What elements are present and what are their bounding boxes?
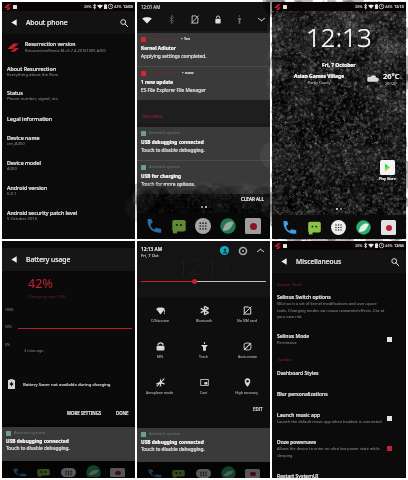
button[interactable]: Kernel Adiutor: [137, 33, 270, 66]
button[interactable]: Play Store: [379, 160, 396, 181]
button[interactable]: Android system: [137, 127, 270, 160]
button[interactable]: Bluetooth: [184, 305, 224, 323]
button[interactable]: Messaging: [36, 468, 51, 477]
button[interactable]: Launch music app: [272, 412, 406, 424]
staticText: Bluetooth: [196, 318, 213, 323]
button[interactable]: Auto-rotate: [227, 341, 267, 359]
button[interactable]: EDIT: [253, 406, 263, 412]
button[interactable]: Torch: [184, 341, 224, 359]
button[interactable]: Android system: [137, 161, 270, 194]
button[interactable]: DONE: [116, 410, 129, 416]
staticText: 0%: [5, 342, 10, 347]
staticText: Fri, 7 Oct: [141, 253, 159, 259]
button[interactable]: MN: [140, 341, 180, 359]
staticText: 12:13 AM: [141, 246, 163, 253]
button[interactable]: Phone: [146, 218, 162, 234]
staticText: Kernel Adiutor: [141, 45, 176, 52]
button[interactable]: Aeroplane mode: [140, 377, 180, 395]
staticText: Play Store: [379, 176, 396, 181]
staticText: 12:01 AM: [141, 4, 161, 10]
staticText: Applying settings completed.: [141, 53, 207, 60]
staticText: • now: [182, 70, 194, 76]
button[interactable]: C/Stivo.exe: [140, 305, 180, 323]
button[interactable]: Search: [117, 16, 130, 29]
button[interactable]: Selinux Mode: [272, 333, 406, 345]
button[interactable]: About Resurrection: [2, 65, 135, 78]
button[interactable]: Asian Games Village: [274, 71, 400, 86]
staticText: Selinux Mode: [277, 333, 310, 340]
staticText: A350: [7, 166, 17, 172]
button[interactable]: Settings: [238, 246, 247, 255]
staticText: Device model: [7, 159, 42, 166]
button[interactable]: Phone: [282, 220, 297, 235]
staticText: 44%: [385, 4, 393, 9]
button[interactable]: Cast: [184, 377, 224, 395]
staticText: USB debugging connected: [6, 438, 69, 445]
button[interactable]: Messaging: [171, 218, 187, 234]
button[interactable]: Selinux Switch options: [272, 294, 406, 319]
staticText: Torch: [199, 354, 209, 359]
staticText: ONGOING: [142, 114, 163, 120]
button[interactable]: Back: [7, 16, 20, 29]
button[interactable]: High accuracy: [227, 377, 267, 395]
button[interactable]: Messaging: [307, 220, 322, 235]
button[interactable]: Resurrection version: [2, 39, 135, 55]
staticText: Phone number, signal, etc.: [7, 96, 59, 102]
button[interactable]: Legal information: [2, 115, 135, 122]
button[interactable]: Back: [277, 255, 290, 268]
staticText: Doze powersave: [277, 439, 317, 446]
button[interactable]: All apps: [61, 468, 76, 477]
button[interactable]: Search: [388, 255, 401, 268]
staticText: Asian Games Village: [294, 73, 345, 80]
staticText: Android version: [7, 184, 48, 191]
staticText: Battery usage: [26, 255, 71, 264]
button[interactable]: Browser: [220, 218, 236, 234]
staticText: 12:13: [394, 4, 404, 9]
button[interactable]: CLEAR ALL: [241, 196, 264, 202]
button[interactable]: Android security patch level: [2, 209, 135, 222]
button[interactable]: Dashboard Styles: [272, 370, 406, 377]
button[interactable]: Restart SystemUI: [272, 473, 406, 478]
button[interactable]: Camera: [381, 220, 396, 235]
button[interactable]: Battery Saver not available during charg…: [2, 379, 135, 389]
button[interactable]: Collapse: [256, 246, 265, 255]
staticText: USB debugging connected: [141, 439, 204, 446]
button[interactable]: MORE SETTINGS: [67, 410, 102, 416]
staticText: 50%: [5, 324, 12, 329]
button[interactable]: User: [220, 246, 229, 255]
staticText: Launch music app: [277, 412, 321, 419]
staticText: Android system: [149, 431, 181, 437]
staticText: No SIM card: [237, 318, 258, 323]
button[interactable]: All apps: [196, 469, 211, 478]
button[interactable]: Android system: [2, 427, 135, 461]
staticText: USB for charging: [141, 173, 182, 180]
button[interactable]: Android system: [137, 428, 270, 462]
button[interactable]: Status: [2, 89, 135, 102]
button[interactable]: Camera: [245, 218, 261, 234]
button[interactable]: Blur personalizations: [272, 391, 406, 398]
button[interactable]: All apps: [331, 220, 346, 235]
button[interactable]: Device model: [2, 159, 135, 172]
button[interactable]: Browser: [221, 469, 236, 478]
staticText: 26°C: [383, 71, 400, 81]
button[interactable]: No SIM card: [227, 305, 267, 323]
staticText: Dashboard Styles: [277, 370, 319, 377]
button[interactable]: Android version: [2, 184, 135, 197]
button[interactable]: Browser: [86, 468, 101, 477]
staticText: Miscellaneous: [296, 257, 342, 266]
button[interactable]: All apps: [195, 218, 211, 234]
button[interactable]: Doze powersave: [272, 439, 406, 458]
staticText: Tweaks: [277, 357, 292, 362]
button[interactable]: Phone: [12, 468, 27, 477]
staticText: Android security patch level: [7, 209, 78, 216]
button[interactable]: ES File Explorer: [137, 67, 270, 100]
staticText: 42%: [114, 4, 122, 9]
button[interactable]: Back: [7, 253, 20, 266]
staticText: 5 October 2016: [7, 216, 38, 222]
button[interactable]: Messaging: [171, 469, 186, 478]
button[interactable]: Phone: [147, 469, 162, 478]
button[interactable]: Camera: [110, 468, 125, 477]
button[interactable]: Camera: [245, 469, 260, 478]
button[interactable]: Device name: [2, 134, 135, 147]
button[interactable]: Browser: [356, 220, 371, 235]
